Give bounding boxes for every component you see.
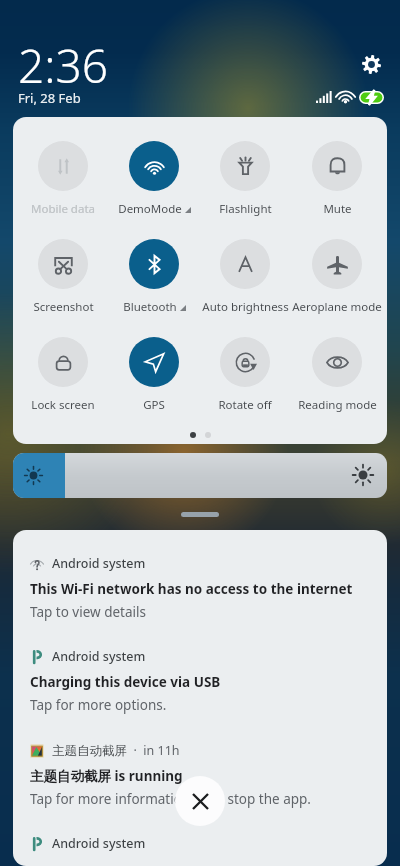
- staticText: Screenshot: [33, 299, 94, 315]
- staticText: Flashlight: [219, 201, 272, 217]
- staticText: GPS: [143, 397, 165, 413]
- button[interactable]: GPS: [108, 337, 200, 413]
- button[interactable]: Flashlight: [199, 141, 291, 217]
- staticText: This Wi-Fi network has no access to the …: [30, 580, 353, 598]
- button[interactable]: Mute: [291, 141, 383, 217]
- button[interactable]: Android system: [13, 623, 387, 716]
- button[interactable]: [13, 453, 387, 498]
- button[interactable]: Android system: [13, 810, 387, 866]
- staticText: Reading mode: [298, 397, 377, 413]
- staticText: · in 11h: [127, 742, 180, 759]
- button[interactable]: Screenshot: [17, 239, 109, 315]
- staticText: Rotate off: [218, 397, 272, 413]
- staticText: Mobile data: [31, 201, 95, 217]
- button[interactable]: Bluetooth: [108, 239, 200, 315]
- staticText: Charging this device via USB: [30, 673, 221, 691]
- staticText: Aeroplane mode: [292, 299, 382, 315]
- staticText: Tap for more options.: [30, 696, 167, 714]
- staticText: Android system: [52, 648, 146, 665]
- staticText: Android system: [52, 555, 146, 572]
- button[interactable]: Reading mode: [291, 337, 383, 413]
- staticText: Android system: [52, 835, 146, 852]
- staticText: Lock screen: [31, 397, 95, 413]
- button[interactable]: Settings: [358, 51, 385, 78]
- button[interactable]: Auto brightness: [199, 239, 291, 315]
- button[interactable]: Close: [175, 776, 225, 826]
- staticText: Tap to view details: [30, 603, 146, 621]
- button[interactable]: DemoMode: [108, 141, 200, 217]
- staticText: Tap for more information or to stop the …: [30, 790, 311, 808]
- button[interactable]: Android system: [13, 530, 387, 623]
- staticText: 主题自动截屏: [52, 743, 127, 759]
- button[interactable]: Mobile data: [17, 141, 109, 217]
- staticText: 主题自动截屏 is running: [30, 767, 183, 785]
- button[interactable]: Aeroplane mode: [291, 239, 383, 315]
- staticText: Auto brightness: [202, 299, 289, 315]
- staticText: Fri, 28 Feb: [18, 89, 81, 107]
- staticText: Mute: [323, 201, 352, 217]
- button[interactable]: Rotate off: [199, 337, 291, 413]
- staticText: Bluetooth: [123, 299, 177, 315]
- button[interactable]: 主题自动截屏: [13, 717, 387, 810]
- staticText: DemoMode: [118, 201, 182, 217]
- button[interactable]: Lock screen: [17, 337, 109, 413]
- staticText: 2:36: [18, 34, 109, 97]
